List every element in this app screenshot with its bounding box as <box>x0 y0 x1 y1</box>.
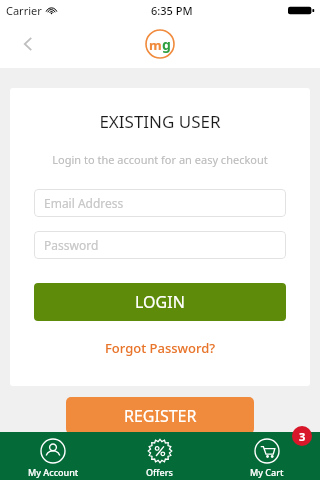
button[interactable]: Email Address <box>34 189 286 217</box>
staticText: m <box>149 36 162 54</box>
staticText: Offers <box>146 466 173 478</box>
staticText: 3 <box>299 429 306 444</box>
staticText: My Account <box>28 466 79 478</box>
staticText: Password <box>44 237 99 253</box>
staticText: LOGIN <box>135 291 185 313</box>
button[interactable]: Offers <box>106 432 213 480</box>
staticText: REGISTER <box>124 405 197 427</box>
button[interactable]: Forgot Password? <box>101 335 220 361</box>
staticText: Forgot Password? <box>105 339 216 357</box>
button[interactable]: LOGIN <box>34 283 286 321</box>
button[interactable]: My Account <box>0 432 106 480</box>
staticText: Login to the account for an easy checkou… <box>52 152 268 167</box>
staticText: My Cart <box>250 466 284 478</box>
staticText: EXISTING USER <box>99 110 221 133</box>
staticText: g <box>162 35 171 54</box>
button[interactable]: REGISTER <box>66 397 254 434</box>
button[interactable]: My Cart <box>213 432 320 480</box>
button[interactable]: Password <box>34 231 286 259</box>
staticText: Carrier <box>6 3 42 18</box>
staticText: Email Address <box>44 195 124 211</box>
staticText: 6:35 PM <box>151 3 193 18</box>
button[interactable]: Back <box>8 24 48 64</box>
